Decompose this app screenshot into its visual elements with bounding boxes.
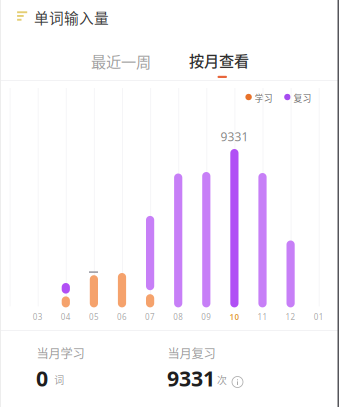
staticText: 03 — [33, 312, 43, 322]
button[interactable]: About monthly review count — [229, 374, 245, 390]
staticText: 10 — [229, 312, 239, 322]
staticText: 04 — [61, 312, 71, 322]
staticText: 词 — [54, 372, 64, 387]
staticText: 12 — [286, 312, 296, 322]
staticText: 复习 — [294, 91, 312, 104]
staticText: 当月复习 — [167, 344, 215, 362]
staticText: 05 — [89, 312, 99, 322]
staticText: 最近一周 — [91, 50, 151, 72]
staticText: 06 — [117, 312, 127, 322]
staticText: 次 — [217, 372, 227, 387]
staticText: 当月学习 — [36, 344, 84, 362]
staticText: 07 — [145, 312, 155, 322]
staticText: 单词输入量 — [34, 7, 109, 28]
button[interactable]: 单词输入量 — [13, 4, 117, 30]
staticText: 08 — [173, 312, 183, 322]
staticText: 9331 — [167, 364, 215, 392]
staticText: 0 — [36, 364, 48, 392]
staticText: 11 — [257, 312, 267, 322]
button[interactable]: 最近一周 — [85, 50, 157, 72]
staticText: 01 — [314, 312, 324, 322]
button[interactable]: 按月查看 — [183, 50, 255, 80]
staticText: 学习 — [255, 91, 273, 104]
staticText: 09 — [201, 312, 211, 322]
staticText: 按月查看 — [189, 49, 249, 71]
staticText: 9331 — [220, 128, 248, 144]
